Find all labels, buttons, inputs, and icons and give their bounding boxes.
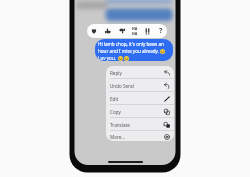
button[interactable]: Thumbs up: [101, 24, 115, 38]
button[interactable]: Hi lamb chop, it's only been an: [95, 39, 173, 61]
button[interactable]: Copy: [106, 105, 174, 118]
button[interactable]: Edit: [106, 92, 174, 105]
button[interactable]: Haha: [128, 24, 141, 38]
button[interactable]: More...: [106, 130, 174, 141]
button[interactable]: Question: [154, 24, 167, 38]
button[interactable]: Love: [87, 24, 101, 38]
staticText: Translate: [110, 122, 130, 128]
staticText: Luv you.: [98, 55, 116, 61]
staticText: Reply: [110, 70, 122, 76]
button[interactable]: Translate: [106, 118, 174, 131]
staticText: Hi lamb chop, it's only been an: [98, 41, 164, 47]
staticText: Copy: [110, 109, 121, 115]
staticText: HA: [132, 31, 138, 36]
button[interactable]: Exclamation: [141, 24, 154, 38]
staticText: HA: [132, 26, 138, 31]
button[interactable]: Reply: [106, 66, 174, 79]
button[interactable]: Undo Send: [106, 79, 174, 92]
staticText: hour and I miss you already.: [98, 48, 159, 54]
button[interactable]: Thumbs down: [115, 24, 128, 38]
staticText: Undo Send: [110, 83, 134, 89]
staticText: More...: [110, 134, 126, 140]
staticText: Edit: [110, 96, 119, 102]
staticText: ?: [159, 26, 163, 36]
